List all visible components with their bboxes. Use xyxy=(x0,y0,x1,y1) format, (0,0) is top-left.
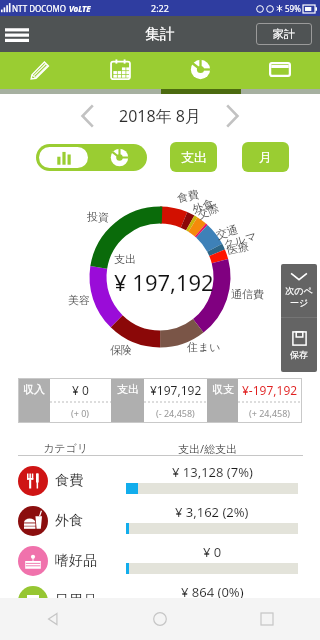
staticText: (- 24,458) xyxy=(156,407,195,419)
button[interactable]: Menu xyxy=(5,22,29,46)
staticText: 外食 xyxy=(55,512,83,530)
staticText: カテゴリ xyxy=(43,441,89,455)
button[interactable]: Calendar xyxy=(80,52,160,89)
button[interactable]: 月 xyxy=(242,142,289,172)
staticText: 支出 xyxy=(114,252,136,266)
staticText: クルマ xyxy=(222,229,258,251)
staticText: 2018年 8月 xyxy=(119,105,201,127)
staticText: 保険 xyxy=(110,343,132,357)
staticText: 住まい xyxy=(187,340,221,354)
button[interactable]: 支出 xyxy=(170,142,217,172)
staticText: 集計 xyxy=(145,25,175,44)
staticText: NTT DOCOMO xyxy=(12,3,66,14)
staticText: 通信費 xyxy=(231,287,264,301)
button[interactable]: 家計 xyxy=(256,23,312,45)
staticText: 保存 xyxy=(290,349,308,360)
button[interactable]: Bar chart xyxy=(39,147,88,168)
staticText: VoLTE xyxy=(69,3,91,14)
staticText: ¥ 197,192 xyxy=(114,267,214,297)
staticText: 支出 xyxy=(117,382,139,396)
button[interactable]: Home xyxy=(106,598,213,640)
button[interactable]: Previous month xyxy=(69,98,105,134)
staticText: 交際 xyxy=(195,200,221,222)
staticText: 交通 xyxy=(214,222,239,242)
staticText: 嗜好品 xyxy=(55,552,97,570)
button[interactable]: Back xyxy=(0,598,106,640)
staticText: (+ 24,458) xyxy=(249,407,291,419)
staticText: 医療 xyxy=(226,239,250,257)
button[interactable]: Accounts xyxy=(240,52,320,89)
staticText: 2:22 xyxy=(151,2,169,14)
staticText: 支出 xyxy=(181,149,207,165)
staticText: ¥ 13,128 (7%) xyxy=(172,463,253,481)
staticText: 支出/総支出 xyxy=(178,441,238,456)
staticText: 食費 xyxy=(176,187,200,205)
button[interactable]: Next month xyxy=(215,98,251,134)
button[interactable]: 保存 xyxy=(281,318,317,372)
staticText: ¥-197,192 xyxy=(242,382,298,398)
staticText: ¥ 0 xyxy=(72,382,89,398)
staticText: 家計 xyxy=(273,27,295,41)
button[interactable]: Input xyxy=(0,52,80,89)
staticText: ¥ 864 (0%) xyxy=(181,583,244,601)
staticText: ¥ 3,162 (2%) xyxy=(175,503,249,521)
button[interactable]: 次のページ xyxy=(281,264,317,317)
button[interactable]: Pie chart xyxy=(91,144,147,171)
button[interactable]: 嗜好品 xyxy=(0,541,320,581)
button[interactable]: 外食 xyxy=(0,501,320,541)
staticText: 収支 xyxy=(212,382,234,396)
button[interactable]: 日用品 xyxy=(0,581,320,621)
staticText: 美容 xyxy=(68,293,90,307)
staticText: (+ 0) xyxy=(71,407,90,419)
staticText: 外食 xyxy=(190,196,216,216)
staticText: 投資 xyxy=(87,210,109,224)
staticText: 59% xyxy=(285,3,301,14)
staticText: 日用品 xyxy=(55,592,97,610)
staticText: 月 xyxy=(259,149,272,165)
button[interactable]: Recent apps xyxy=(213,598,320,640)
staticText: 次のページ xyxy=(282,285,316,309)
button[interactable]: Reports xyxy=(160,52,240,89)
button[interactable]: 食費 xyxy=(0,461,320,501)
staticText: 収入 xyxy=(23,382,45,396)
staticText: ¥197,192 xyxy=(150,382,202,398)
staticText: 食費 xyxy=(55,472,83,490)
staticText: ¥ 0 xyxy=(203,543,222,561)
